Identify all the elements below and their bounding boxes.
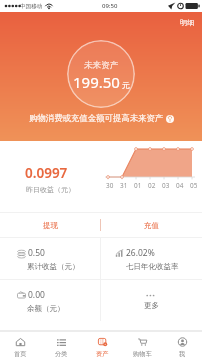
staticText: 0.0997 bbox=[25, 164, 68, 182]
staticText: 昨日收益（元） bbox=[26, 185, 75, 194]
staticText: 购物消费或充值金额可提高未来资产 bbox=[29, 113, 164, 124]
staticText: 0.50 bbox=[28, 247, 45, 259]
staticText: 我 bbox=[179, 350, 186, 358]
staticText: 元 bbox=[122, 80, 130, 90]
staticText: 0.00 bbox=[28, 289, 45, 301]
staticText: 余额（元） bbox=[27, 304, 65, 313]
staticText: 未来资产 bbox=[84, 60, 119, 71]
staticText: 中国移动 bbox=[20, 3, 43, 10]
staticText: 资产 bbox=[96, 350, 109, 358]
button[interactable]: 0.00 bbox=[0, 280, 100, 321]
staticText: 七日年化收益率 bbox=[126, 262, 179, 271]
staticText: 03 bbox=[162, 181, 170, 190]
staticText: 05 bbox=[190, 181, 198, 190]
staticText: 04 bbox=[176, 181, 184, 190]
staticText: 首页 bbox=[14, 350, 27, 358]
staticText: 01 bbox=[134, 181, 142, 190]
button[interactable]: 提现 bbox=[0, 213, 100, 237]
staticText: 累计收益（元） bbox=[27, 262, 80, 271]
staticText: 更多 bbox=[144, 301, 159, 310]
staticText: 31 bbox=[120, 181, 128, 190]
staticText: 购物车 bbox=[133, 350, 152, 358]
button[interactable]: 购物车 bbox=[122, 332, 162, 360]
button[interactable]: 资产 bbox=[82, 332, 122, 360]
staticText: 充值 bbox=[144, 221, 159, 230]
staticText: 02 bbox=[148, 181, 156, 190]
staticText: 30 bbox=[106, 181, 114, 190]
staticText: 明细 bbox=[180, 18, 194, 27]
button[interactable]: 充值 bbox=[101, 213, 202, 237]
button[interactable]: 更多 bbox=[101, 280, 202, 321]
button[interactable]: 分类 bbox=[41, 332, 82, 360]
staticText: 26.02% bbox=[126, 247, 155, 259]
button[interactable]: 我 bbox=[162, 332, 202, 360]
button[interactable]: 明细 bbox=[177, 15, 197, 30]
button[interactable]: 26.02% bbox=[101, 238, 202, 279]
staticText: 提现 bbox=[43, 221, 58, 230]
button[interactable]: 0.50 bbox=[0, 238, 100, 279]
staticText: 分类 bbox=[55, 350, 68, 358]
staticText: 199.50 bbox=[73, 72, 120, 92]
button[interactable]: 首页 bbox=[0, 332, 41, 360]
staticText: 09:50 bbox=[102, 2, 118, 10]
